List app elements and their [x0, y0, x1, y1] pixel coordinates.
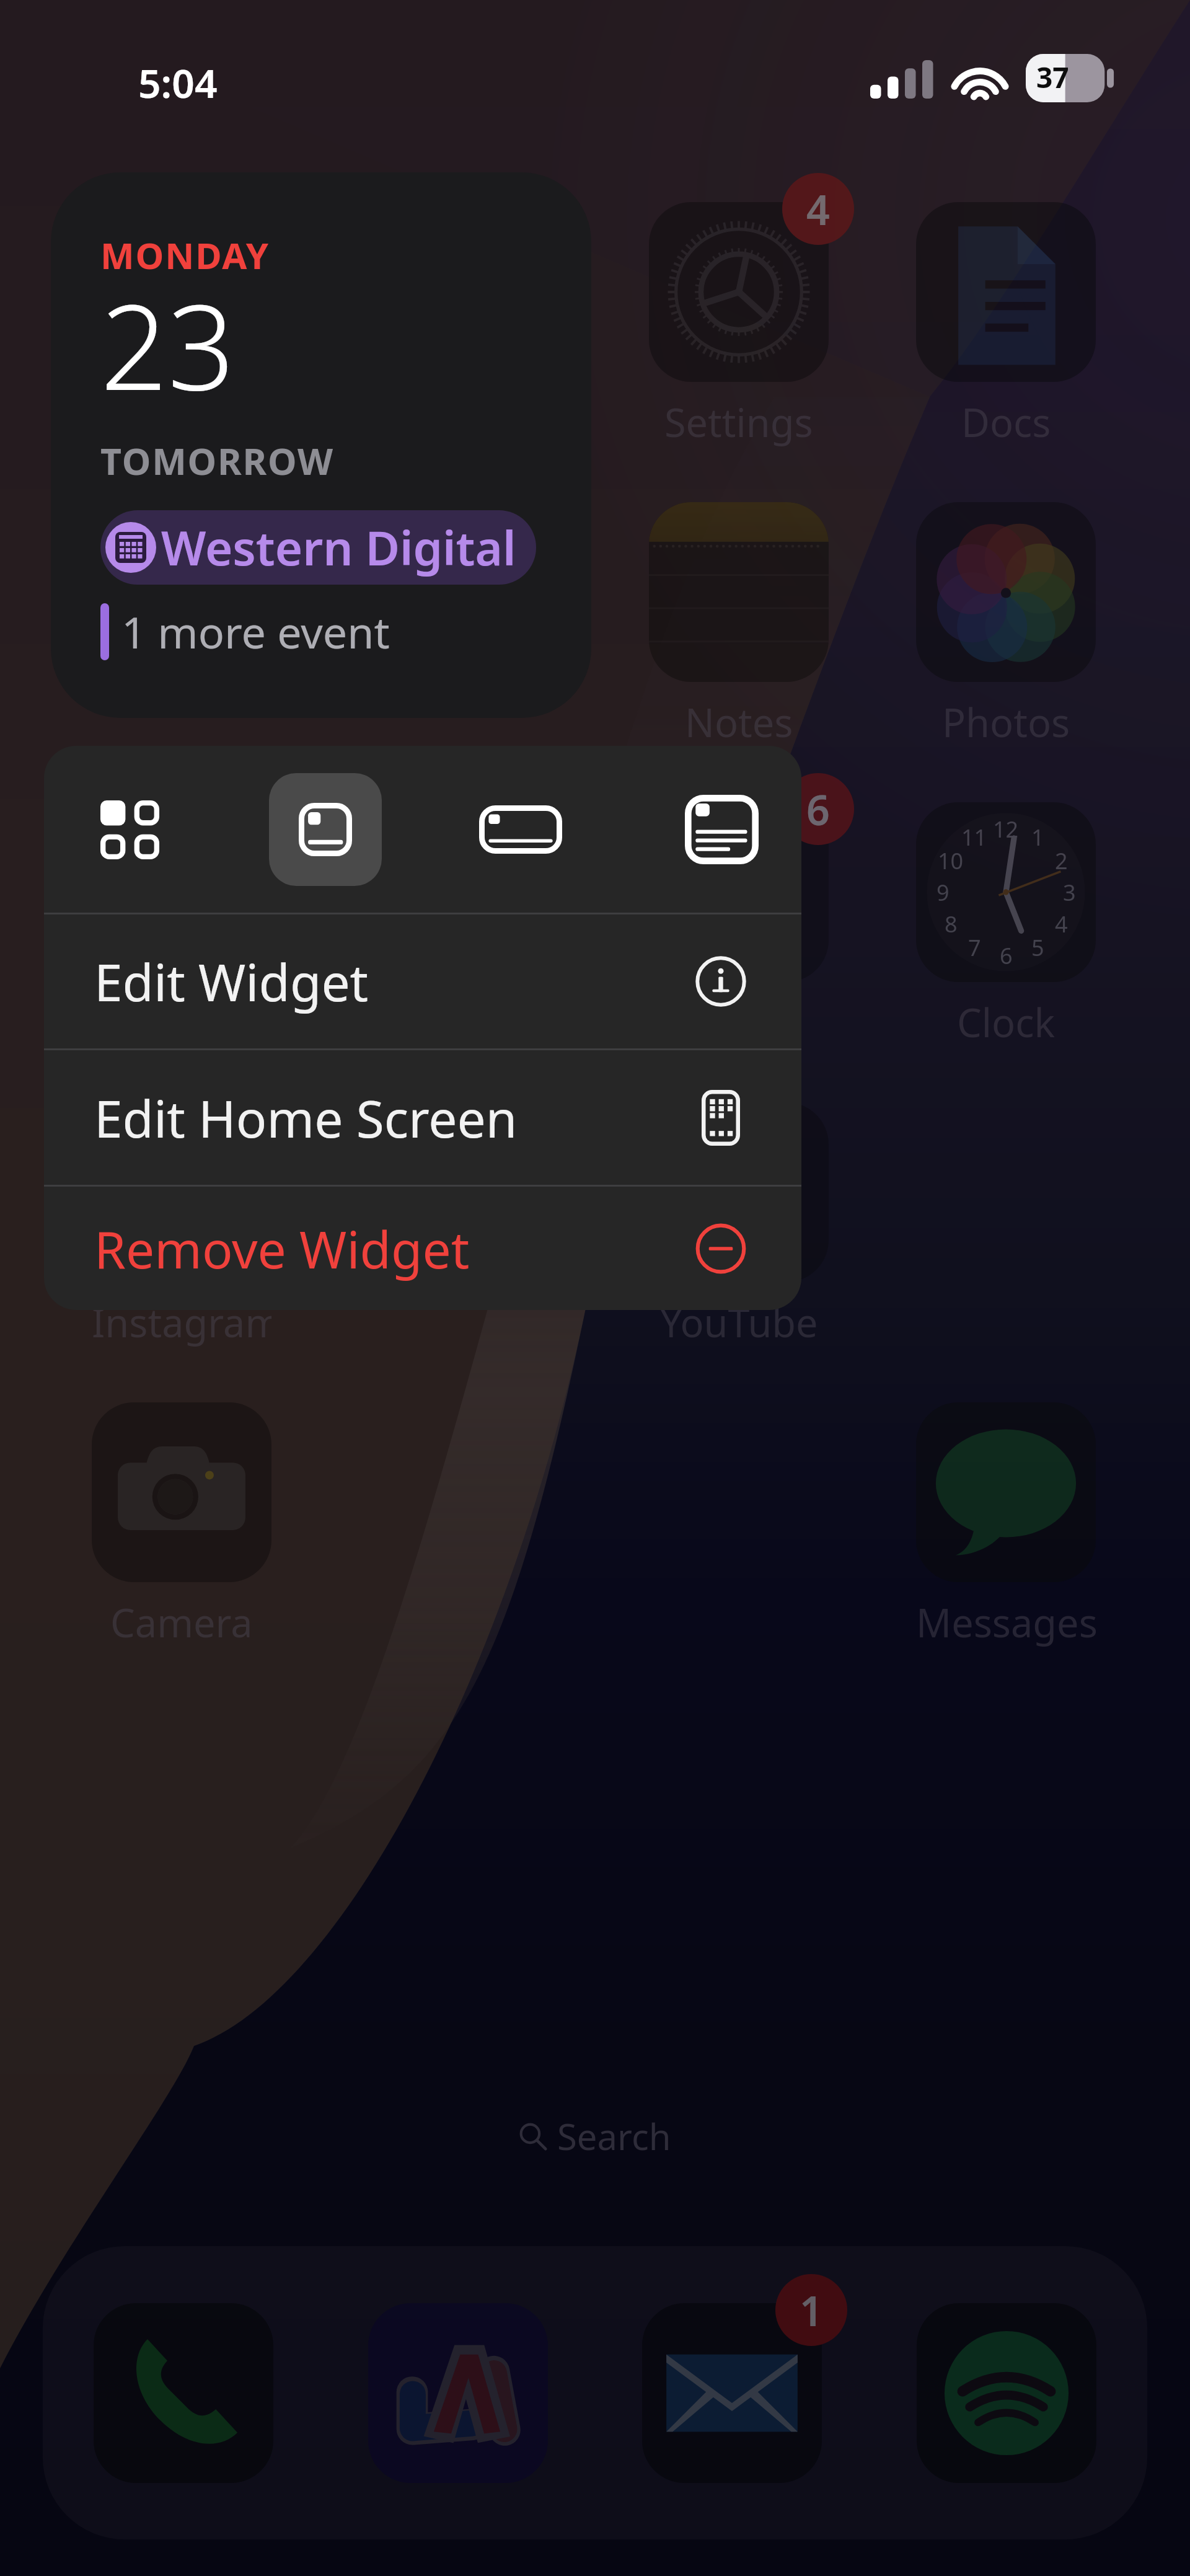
staticText: 6 [1000, 941, 1013, 971]
staticText: 5:04 [138, 56, 218, 110]
staticText: Edit Widget [94, 947, 693, 1016]
button[interactable]: Search [494, 2103, 696, 2169]
button[interactable]: 6 [649, 802, 829, 1069]
button[interactable]: YouTube [649, 1102, 829, 1369]
staticText: 8 [945, 909, 958, 939]
staticText: 3 [1063, 877, 1076, 908]
staticText: 4 [806, 181, 830, 237]
button[interactable]: Docs [916, 202, 1096, 469]
button[interactable]: Small widget [73, 746, 186, 913]
staticText: Search [557, 2112, 671, 2161]
button[interactable]: Medium widget [269, 746, 382, 913]
staticText: 11 [961, 822, 987, 852]
button[interactable] [92, 802, 271, 1069]
button[interactable]: Large widget [665, 746, 778, 913]
staticText: 12 [993, 814, 1019, 844]
staticText: 10 [938, 846, 964, 876]
staticText: Photos [942, 696, 1070, 749]
staticText: 1 more event [121, 602, 390, 661]
button[interactable]: Settings [649, 202, 829, 469]
button[interactable]: Photos [916, 502, 1096, 769]
button[interactable]: Camera [92, 1402, 271, 1669]
staticText: 23 [100, 264, 235, 425]
staticText: 6 [806, 781, 830, 837]
staticText: 5 [1031, 932, 1044, 963]
staticText: 9 [937, 877, 950, 908]
staticText: 4 [1055, 909, 1068, 939]
staticText: Clock [957, 996, 1056, 1049]
staticText: Camera [110, 1596, 253, 1649]
button[interactable]: Edit Home Screen [44, 1050, 801, 1185]
button[interactable]: Wide widget [464, 746, 577, 913]
button[interactable]: Instagram [92, 1102, 271, 1369]
button[interactable]: MONDAY [51, 172, 591, 718]
staticText: Docs [961, 396, 1051, 449]
staticText: Western Digital [161, 515, 516, 580]
staticText: 1 [800, 2282, 823, 2338]
staticText: Instagram [92, 1296, 271, 1349]
staticText: Notes [685, 696, 793, 749]
button[interactable]: Phone [94, 2303, 273, 2483]
staticText: Settings [664, 396, 813, 449]
button[interactable]: Notes [649, 502, 829, 769]
button[interactable]: Remove Widget [44, 1187, 801, 1310]
button[interactable]: Mail [642, 2303, 822, 2483]
button[interactable]: Spotify [917, 2303, 1096, 2483]
staticText: MONDAY [100, 231, 270, 280]
staticText: 37 [1036, 58, 1069, 97]
button[interactable]: 1 [916, 802, 1096, 1069]
staticText: TOMORROW [100, 436, 334, 485]
staticText: Messages [916, 1596, 1096, 1649]
staticText: 7 [968, 932, 981, 963]
staticText: Remove Widget [94, 1214, 693, 1283]
staticText: YouTube [660, 1296, 818, 1349]
staticText: 1 [1031, 822, 1044, 852]
button[interactable]: Edit Widget [44, 914, 801, 1048]
button[interactable]: Messages [916, 1402, 1096, 1669]
staticText: Edit Home Screen [94, 1083, 693, 1153]
staticText: 2 [1055, 846, 1068, 876]
button[interactable]: Browser [368, 2303, 548, 2483]
